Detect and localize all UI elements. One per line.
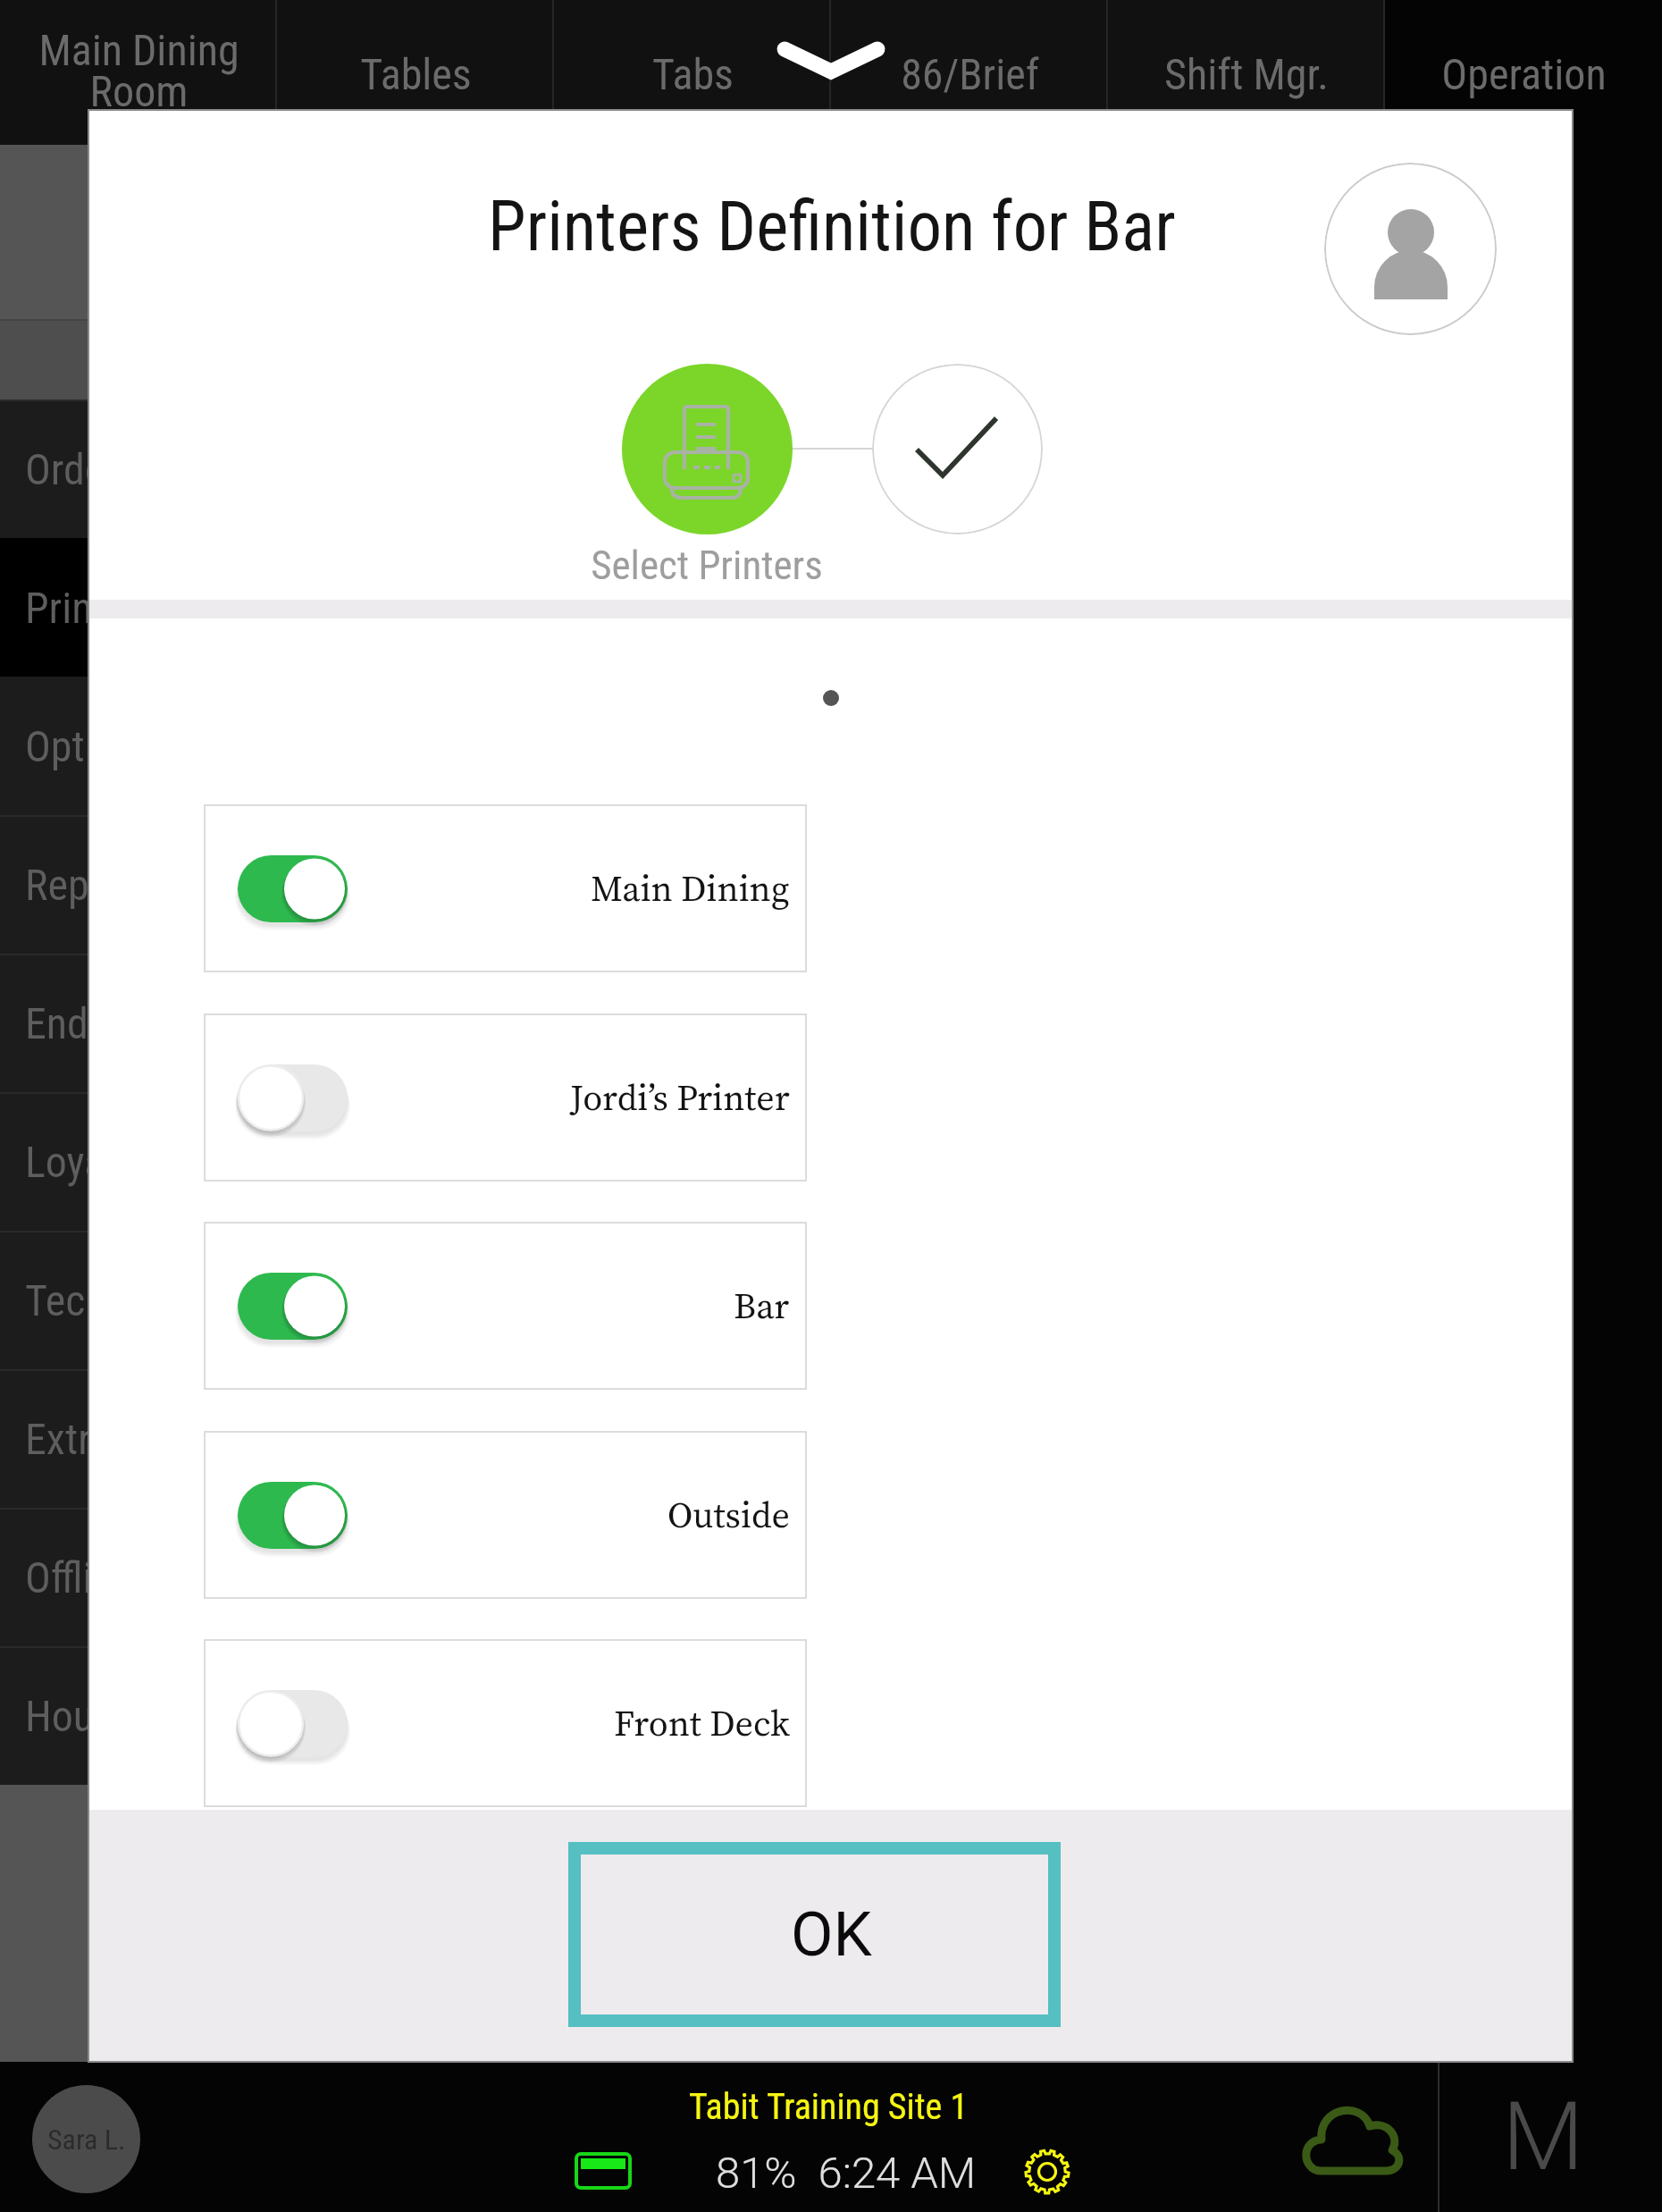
button[interactable]: OK — [568, 1842, 1061, 2027]
button[interactable]: Sara L. profile — [32, 2085, 140, 2193]
staticText: Printers — [25, 583, 158, 633]
button[interactable]: Confirm step — [872, 364, 1043, 534]
button[interactable]: Bar — [204, 1222, 807, 1390]
staticText: OK — [791, 1898, 872, 1971]
button[interactable]: End Of Day — [0, 954, 277, 1092]
button[interactable]: Shift Mgr. — [1108, 0, 1385, 110]
button[interactable]: Account — [1324, 163, 1497, 335]
staticText: Tables — [360, 49, 472, 99]
staticText: Sara L. — [47, 2123, 126, 2157]
staticText: Offline — [25, 1552, 134, 1602]
staticText: Tabit Training Site 1 — [689, 2086, 969, 2128]
button[interactable]: Cloud status — [1300, 2103, 1403, 2176]
button[interactable]: Loyalty — [0, 1092, 277, 1231]
button[interactable]: Tabs — [554, 0, 831, 110]
button[interactable]: Offline — [0, 1508, 277, 1646]
staticText: Options — [25, 721, 156, 771]
staticText: Printers Definition for Bar — [488, 187, 1176, 267]
staticText: Extras — [25, 1414, 130, 1464]
staticText: House — [25, 1691, 134, 1741]
staticText: Operation — [1441, 49, 1607, 99]
staticText: Jordi’s Printer — [570, 1073, 790, 1123]
button[interactable]: Main Dining Room — [0, 0, 277, 110]
button[interactable]: House — [0, 1646, 277, 1785]
button[interactable]: Tech — [0, 1231, 277, 1369]
button[interactable]: Options — [0, 677, 277, 815]
button[interactable]: Tables — [277, 0, 554, 110]
staticText: End Of Day — [25, 998, 211, 1048]
staticText: Tech — [25, 1275, 106, 1325]
button[interactable]: Main Dining — [204, 804, 807, 972]
staticText: 86/Brief — [901, 49, 1039, 99]
button[interactable]: Front Deck — [204, 1639, 807, 1807]
button[interactable]: Jordi’s Printer — [204, 1013, 807, 1182]
staticText: Orders — [25, 444, 138, 494]
button[interactable]: Select Printers step — [622, 364, 793, 534]
button[interactable]: Menu — [1440, 2062, 1662, 2212]
button[interactable]: Operation — [1385, 0, 1662, 110]
staticText: Main Dining Room — [38, 25, 239, 117]
button[interactable]: Orders — [0, 400, 277, 538]
staticText: 81% 6:24 AM — [716, 2148, 977, 2199]
button[interactable]: 86/Brief — [831, 0, 1108, 110]
staticText: Bar — [734, 1282, 790, 1331]
button[interactable]: Settings — [1022, 2147, 1072, 2197]
staticText: Main Dining — [591, 864, 790, 913]
button[interactable]: Extras — [0, 1369, 277, 1508]
staticText: Shift Mgr. — [1164, 49, 1329, 99]
staticText: Tabs — [652, 49, 734, 99]
staticText: Select Printers — [510, 542, 903, 589]
staticText: Loyalty — [25, 1137, 146, 1187]
button[interactable]: Reports — [0, 815, 277, 954]
staticText: M — [1502, 2082, 1584, 2192]
staticText: Front Deck — [614, 1699, 790, 1748]
button[interactable]: Printers — [0, 538, 277, 677]
staticText: Reports — [25, 860, 157, 910]
button[interactable]: Outside — [204, 1431, 807, 1599]
staticText: Outside — [667, 1491, 790, 1540]
